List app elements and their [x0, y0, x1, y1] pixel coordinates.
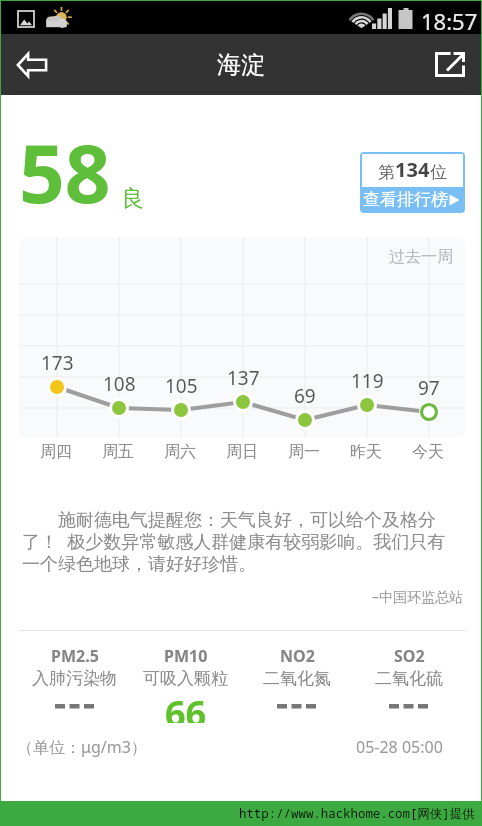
- staticText: 108: [103, 371, 136, 397]
- staticText: 58: [19, 117, 111, 226]
- staticText: 昨天: [350, 442, 382, 462]
- staticText: SO2: [394, 645, 425, 667]
- staticText: 97: [418, 375, 440, 401]
- button[interactable]: PM2.5: [19, 645, 130, 723]
- staticText: 施耐德电气提醒您：天气良好，可以给个及格分了！ 极少数异常敏感人群健康有较弱影响…: [22, 507, 459, 575]
- button[interactable]: SO2: [353, 645, 465, 723]
- staticText: 137: [227, 365, 260, 391]
- staticText: 18:57: [421, 6, 478, 36]
- staticText: 今天: [412, 442, 444, 462]
- staticText: http://www.hackhome.com[网侠]提供: [239, 805, 475, 822]
- staticText: （单位：μg/m3）: [17, 736, 147, 758]
- staticText: 周六: [164, 442, 196, 462]
- staticText: NO2: [280, 645, 315, 667]
- staticText: 69: [294, 383, 316, 409]
- staticText: 二氧化氮: [263, 668, 331, 689]
- button[interactable]: Back: [1, 34, 63, 95]
- staticText: 周五: [102, 442, 134, 462]
- staticText: 查看排行榜: [363, 189, 448, 210]
- staticText: 可吸入颗粒: [143, 668, 228, 689]
- staticText: 66: [165, 689, 207, 723]
- staticText: 周日: [226, 442, 258, 462]
- staticText: 173: [41, 350, 74, 376]
- staticText: 105: [165, 373, 198, 399]
- staticText: 良: [121, 184, 144, 213]
- staticText: 过去一周: [389, 247, 453, 267]
- staticText: –中国环监总站: [372, 587, 463, 606]
- staticText: 周一: [288, 442, 320, 462]
- staticText: PM10: [164, 645, 208, 667]
- staticText: 海淀: [217, 50, 265, 80]
- staticText: 二氧化硫: [375, 668, 443, 689]
- staticText: 第: [378, 162, 395, 183]
- staticText: 位: [430, 162, 447, 183]
- staticText: 119: [351, 368, 384, 394]
- button[interactable]: 第: [360, 152, 465, 213]
- staticText: PM2.5: [51, 645, 99, 667]
- staticText: 134: [395, 156, 430, 183]
- button[interactable]: PM10: [130, 645, 241, 723]
- staticText: 05-28 05:00: [356, 736, 443, 758]
- button[interactable]: Open in browser: [419, 34, 481, 95]
- staticText: 周四: [40, 442, 72, 462]
- staticText: 入肺污染物: [32, 668, 117, 689]
- button[interactable]: NO2: [241, 645, 353, 723]
